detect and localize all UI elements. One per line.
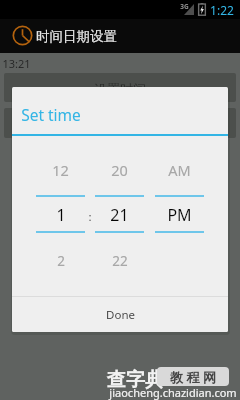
staticText: 查字典 bbox=[107, 368, 164, 392]
staticText: 21 bbox=[110, 204, 129, 226]
staticText: 3G bbox=[180, 2, 189, 11]
button[interactable]: 2 bbox=[36, 240, 85, 281]
staticText: AM bbox=[168, 160, 191, 180]
button[interactable]: 20 bbox=[95, 150, 144, 190]
staticText: Set time bbox=[21, 104, 81, 125]
button[interactable]: AM bbox=[155, 150, 204, 190]
staticText: 22 bbox=[112, 252, 128, 270]
button[interactable]: 22 bbox=[95, 240, 144, 281]
staticText: 教 程 网 bbox=[170, 368, 216, 386]
staticText: 时间日期设置 bbox=[36, 28, 117, 45]
staticText: Done bbox=[106, 307, 135, 323]
other: Date and time bbox=[12, 25, 33, 46]
staticText: 12 bbox=[52, 160, 69, 180]
button[interactable]: 21 bbox=[95, 197, 144, 233]
staticText: 设置时间 bbox=[94, 81, 146, 97]
button[interactable]: 1 bbox=[36, 197, 85, 233]
button[interactable]: 设置时间 bbox=[4, 73, 236, 102]
staticText: 2 bbox=[57, 252, 65, 270]
staticText: : bbox=[88, 209, 92, 225]
staticText: PM bbox=[167, 204, 192, 226]
staticText: 13:21 bbox=[2, 56, 31, 71]
staticText: 1 bbox=[56, 204, 66, 226]
button[interactable]: 12 bbox=[36, 150, 85, 190]
staticText: 1:22 bbox=[210, 2, 234, 18]
button[interactable]: Done bbox=[12, 297, 228, 332]
staticText: jiaocheng.chazidian.com bbox=[109, 385, 237, 400]
staticText: 20 bbox=[111, 160, 128, 180]
button[interactable]: PM bbox=[155, 197, 204, 233]
button[interactable] bbox=[4, 108, 236, 138]
